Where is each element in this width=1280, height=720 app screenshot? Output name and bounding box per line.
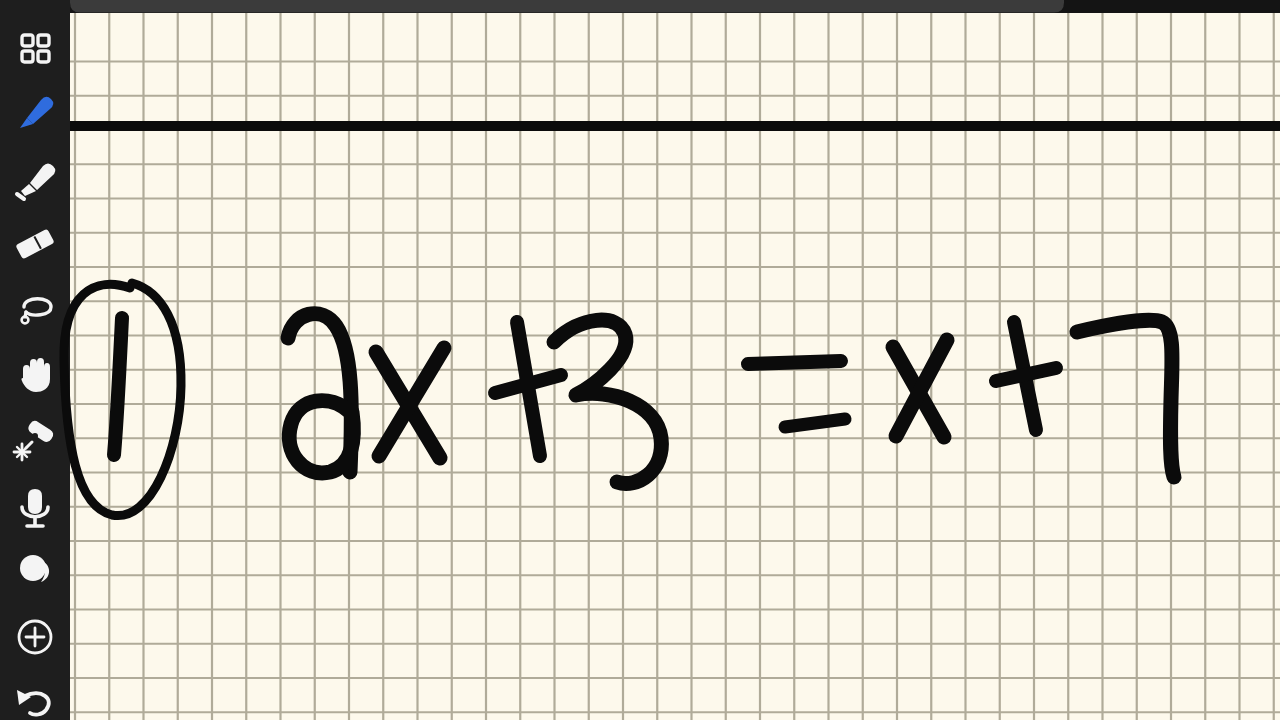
button[interactable]: Highlighter	[9, 153, 61, 205]
button[interactable]: Lasso select	[9, 282, 61, 334]
button[interactable]: Pen	[9, 85, 61, 137]
button[interactable]: Voice note	[9, 482, 61, 534]
button[interactable]: Eraser	[9, 218, 61, 270]
button[interactable]: Undo	[9, 677, 61, 720]
button[interactable]: Apps	[9, 22, 61, 74]
button[interactable]: Smart pen	[9, 414, 61, 466]
button[interactable]: Shape	[9, 545, 61, 597]
button[interactable]: Add	[9, 611, 61, 663]
button[interactable]: Pan	[9, 348, 61, 400]
